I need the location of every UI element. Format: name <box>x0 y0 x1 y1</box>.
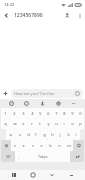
button[interactable]: Keyboard settings <box>54 99 63 108</box>
button[interactable]: f <box>32 129 40 140</box>
button[interactable]: z <box>11 140 19 151</box>
staticText: c <box>32 143 34 148</box>
staticText: e <box>22 121 25 126</box>
button[interactable]: n <box>55 140 64 151</box>
staticText: q <box>4 121 7 126</box>
staticText: 2 <box>13 111 16 116</box>
button[interactable]: x <box>19 140 28 151</box>
button[interactable]: Recents <box>9 170 19 180</box>
button[interactable]: w <box>10 118 19 129</box>
staticText: u <box>55 121 58 126</box>
button[interactable]: Backspace <box>73 140 84 151</box>
staticText: w <box>13 121 17 126</box>
button[interactable]: y <box>44 118 52 129</box>
button[interactable]: 2 <box>10 108 19 118</box>
button[interactable]: o <box>68 118 76 129</box>
staticText: v <box>40 143 43 148</box>
button[interactable]: 3 <box>19 108 28 118</box>
staticText: 0 <box>79 111 82 116</box>
staticText: t <box>39 121 41 126</box>
button[interactable]: 0 <box>76 108 84 118</box>
button[interactable]: More options <box>74 10 85 21</box>
staticText: h <box>51 132 54 137</box>
button[interactable]: t <box>36 118 44 129</box>
staticText: s <box>19 132 21 137</box>
button[interactable]: Emoji <box>7 99 16 108</box>
button[interactable]: !#1 <box>1 151 15 162</box>
button[interactable]: , <box>15 151 23 162</box>
button[interactable]: Home <box>28 170 38 180</box>
button[interactable]: Shift <box>1 140 11 151</box>
button[interactable]: Enter <box>70 151 84 162</box>
staticText: y <box>47 121 50 126</box>
button[interactable]: 4 <box>28 108 36 118</box>
button[interactable]: i <box>60 118 68 129</box>
staticText: 4 <box>31 111 34 116</box>
button[interactable]: b <box>46 140 55 151</box>
button[interactable]: 1 <box>1 108 10 118</box>
button[interactable]: 8 <box>60 108 68 118</box>
button[interactable]: l <box>72 129 80 140</box>
button[interactable]: Tokyo <box>23 151 62 162</box>
staticText: 9 <box>71 111 74 116</box>
button[interactable]: j <box>56 129 64 140</box>
staticText: z <box>14 143 16 148</box>
staticText: 1 <box>4 111 7 116</box>
staticText: n <box>58 143 61 148</box>
button[interactable]: Add attachment <box>0 88 11 99</box>
button[interactable]: 6 <box>44 108 52 118</box>
staticText: 1234567890 <box>14 12 43 19</box>
button[interactable]: c <box>28 140 37 151</box>
button[interactable]: g <box>40 129 48 140</box>
staticText: r <box>31 121 33 126</box>
staticText: g <box>43 132 46 137</box>
button[interactable]: Add contact <box>61 9 74 22</box>
staticText: 7 <box>55 111 58 116</box>
staticText: 6 <box>47 111 50 116</box>
staticText: . <box>65 154 67 159</box>
staticText: m <box>67 143 71 148</box>
button[interactable]: 9 <box>68 108 76 118</box>
button[interactable]: Back <box>47 170 57 180</box>
staticText: !#1 <box>6 155 11 159</box>
staticText: i <box>63 121 65 126</box>
staticText: 3 <box>22 111 25 116</box>
staticText: , <box>18 154 20 159</box>
staticText: Tokyo <box>38 154 48 159</box>
staticText: p <box>79 121 82 126</box>
staticText: How are you? I'm fine <box>14 91 75 96</box>
staticText: x <box>22 143 25 148</box>
button[interactable]: p <box>76 118 84 129</box>
staticText: j <box>59 132 61 137</box>
button[interactable]: r <box>28 118 36 129</box>
button[interactable]: How are you? I'm fine <box>11 89 83 98</box>
button[interactable]: More <box>69 99 78 108</box>
button[interactable]: s <box>15 129 24 140</box>
button[interactable]: q <box>1 118 10 129</box>
staticText: o <box>71 121 74 126</box>
staticText: 14:32 <box>4 2 15 7</box>
button[interactable]: v <box>37 140 46 151</box>
button[interactable]: e <box>19 118 28 129</box>
button[interactable]: Stickers <box>22 99 31 108</box>
button[interactable]: m <box>64 140 73 151</box>
button[interactable]: u <box>52 118 60 129</box>
staticText: b <box>49 143 52 148</box>
button[interactable]: 5 <box>36 108 44 118</box>
button[interactable]: Hide keyboard <box>66 170 76 180</box>
button[interactable]: a <box>6 129 15 140</box>
button[interactable]: Voice input <box>38 99 47 108</box>
button[interactable]: h <box>48 129 56 140</box>
staticText: f <box>35 132 37 137</box>
staticText: 8 <box>63 111 66 116</box>
staticText: 5 <box>39 111 42 116</box>
button[interactable]: d <box>24 129 32 140</box>
button[interactable]: 7 <box>52 108 60 118</box>
staticText: l <box>75 132 77 137</box>
staticText: d <box>27 132 30 137</box>
button[interactable]: Back <box>0 9 13 22</box>
button[interactable]: k <box>64 129 72 140</box>
staticText: a <box>9 132 12 137</box>
staticText: k <box>67 132 70 137</box>
